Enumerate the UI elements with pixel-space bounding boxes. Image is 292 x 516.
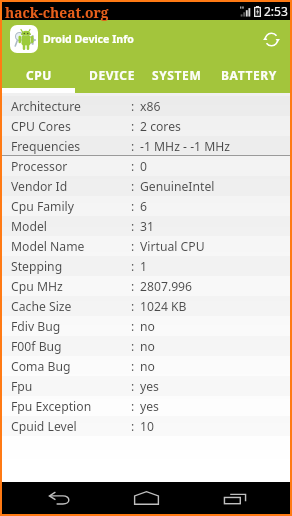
staticText: : <box>131 238 135 255</box>
button[interactable]: CPU <box>4 57 75 93</box>
button[interactable]: Cpuid Level <box>2 416 290 436</box>
button[interactable]: Model Name <box>2 236 290 256</box>
staticText: SYSTEM <box>152 67 202 83</box>
staticText: CPU <box>26 67 53 83</box>
staticText: x86 <box>140 98 161 115</box>
button[interactable]: Fpu <box>2 376 290 396</box>
button[interactable]: CPU Cores <box>2 116 290 136</box>
staticText: no <box>140 338 155 355</box>
button[interactable]: Model <box>2 216 290 236</box>
staticText: 2807.996 <box>140 278 193 295</box>
button[interactable]: Frequencies <box>2 136 290 156</box>
button[interactable]: Recents <box>211 482 259 514</box>
button[interactable]: BATTERY <box>205 57 292 93</box>
button[interactable]: DEVICE <box>75 57 149 93</box>
button[interactable]: Fpu Exception <box>2 396 290 416</box>
button[interactable]: Refresh <box>256 24 286 54</box>
staticText: BATTERY <box>221 67 277 83</box>
button[interactable]: Back <box>36 482 84 514</box>
staticText: Virtual CPU <box>140 238 205 255</box>
staticText: Coma Bug <box>11 358 71 375</box>
staticText: Architecture <box>11 98 81 115</box>
staticText: : <box>131 258 135 275</box>
button[interactable]: F00f Bug <box>2 336 290 356</box>
staticText: Cpu MHz <box>11 278 63 295</box>
staticText: Frequencies <box>11 138 81 155</box>
staticText: GenuineIntel <box>140 178 215 195</box>
staticText: Model Name <box>11 238 85 255</box>
staticText: : <box>131 318 135 335</box>
staticText: no <box>140 358 155 375</box>
button[interactable]: Cache Size <box>2 296 290 316</box>
staticText: 10 <box>140 418 154 435</box>
staticText: yes <box>140 378 159 395</box>
staticText: : <box>131 298 135 315</box>
staticText: : <box>131 378 135 395</box>
staticText: Cache Size <box>11 298 72 315</box>
staticText: 1024 KB <box>140 298 187 315</box>
staticText: : <box>131 98 135 115</box>
staticText: : <box>131 178 135 195</box>
staticText: Vendor Id <box>11 178 68 195</box>
button[interactable]: Processor <box>2 156 290 176</box>
staticText: : <box>131 278 135 295</box>
staticText: no <box>140 318 155 335</box>
staticText: : <box>131 418 135 435</box>
staticText: Model <box>11 218 47 235</box>
staticText: Fpu Exception <box>11 398 92 415</box>
staticText: F00f Bug <box>11 338 62 355</box>
staticText: 1 <box>140 258 147 275</box>
button[interactable]: Stepping <box>2 256 290 276</box>
staticText: 31 <box>140 218 154 235</box>
staticText: : <box>131 158 135 175</box>
staticText: 6 <box>140 198 147 215</box>
staticText: : <box>131 398 135 415</box>
staticText: : <box>131 198 135 215</box>
staticText: 2 cores <box>140 118 181 135</box>
button[interactable]: Vendor Id <box>2 176 290 196</box>
button[interactable]: Home <box>122 482 170 514</box>
staticText: 2:53 <box>264 3 288 19</box>
button[interactable]: SYSTEM <box>149 57 205 93</box>
staticText: : <box>131 358 135 375</box>
staticText: yes <box>140 398 159 415</box>
staticText: Processor <box>11 158 68 175</box>
staticText: Stepping <box>11 258 63 275</box>
button[interactable]: Cpu Family <box>2 196 290 216</box>
staticText: 0 <box>140 158 147 175</box>
staticText: Droid Device Info <box>43 32 134 46</box>
staticText: Fdiv Bug <box>11 318 61 335</box>
button[interactable]: Fdiv Bug <box>2 316 290 336</box>
staticText: CPU Cores <box>11 118 71 135</box>
staticText: -1 MHz - -1 MHz <box>140 138 231 155</box>
staticText: : <box>131 118 135 135</box>
staticText: Fpu <box>11 378 33 395</box>
staticText: : <box>131 338 135 355</box>
button[interactable]: Coma Bug <box>2 356 290 376</box>
staticText: hack-cheat.org <box>5 3 109 22</box>
staticText: : <box>131 138 135 155</box>
staticText: Cpuid Level <box>11 418 77 435</box>
button[interactable]: Cpu MHz <box>2 276 290 296</box>
staticText: DEVICE <box>89 67 135 83</box>
button[interactable]: Architecture <box>2 96 290 116</box>
staticText: : <box>131 218 135 235</box>
staticText: Cpu Family <box>11 198 74 215</box>
